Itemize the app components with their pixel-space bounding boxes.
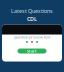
staticText: question preview text (14, 34, 50, 40)
staticText: Latest Questions (11, 7, 53, 14)
staticText: Start (27, 48, 37, 54)
staticText: CDL (27, 15, 37, 23)
button[interactable]: Start (17, 48, 46, 53)
